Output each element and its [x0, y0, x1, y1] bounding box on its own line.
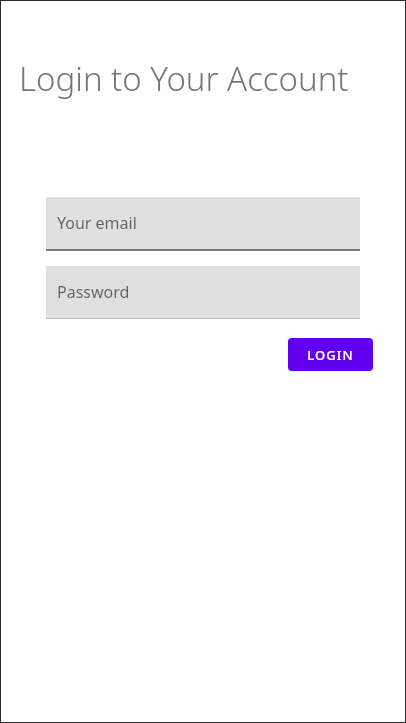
staticText: LOGIN — [307, 346, 354, 364]
button[interactable]: LOGIN — [288, 338, 373, 371]
button[interactable]: Password — [46, 266, 360, 319]
staticText: Password — [57, 281, 130, 303]
staticText: Login to Your Account — [19, 56, 349, 101]
button[interactable]: Your email — [46, 197, 360, 251]
staticText: Your email — [57, 212, 137, 234]
